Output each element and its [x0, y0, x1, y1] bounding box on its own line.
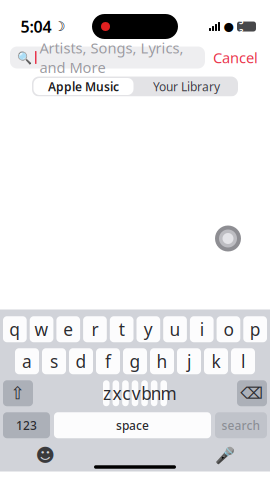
button[interactable]: n — [151, 380, 157, 406]
button[interactable]: e — [56, 316, 80, 342]
button[interactable]: p — [243, 316, 267, 342]
staticText: j — [187, 350, 191, 373]
staticText: t — [119, 318, 125, 341]
staticText: e — [63, 318, 73, 341]
button[interactable]: f — [96, 348, 120, 374]
button[interactable]: y — [136, 316, 160, 342]
button[interactable]: s — [42, 348, 66, 374]
button[interactable]: q — [3, 316, 27, 342]
button[interactable]: o — [217, 316, 240, 342]
staticText: g — [129, 350, 140, 373]
staticText: ☻ — [35, 445, 54, 466]
button[interactable]: t — [110, 316, 133, 342]
button[interactable]: space — [54, 412, 211, 438]
button[interactable]: Your Library — [135, 76, 238, 96]
staticText: w — [35, 318, 49, 341]
button[interactable]: u — [163, 316, 187, 342]
staticText: 🎤 — [215, 446, 235, 464]
button[interactable]: v — [132, 380, 138, 406]
staticText: space — [116, 417, 149, 433]
button[interactable]: c — [122, 380, 129, 406]
staticText: Your Library — [153, 78, 220, 94]
staticText: v — [132, 382, 138, 405]
staticText: ⇧ — [10, 383, 25, 403]
staticText: i — [200, 318, 204, 341]
staticText: Cancel — [213, 48, 258, 67]
button[interactable]: b — [141, 380, 148, 406]
button[interactable]: 123 — [3, 412, 50, 438]
staticText: 53 — [239, 16, 244, 37]
staticText: q — [9, 318, 20, 341]
button[interactable]: i — [190, 316, 214, 342]
staticText: r — [91, 318, 98, 341]
staticText: 5:04 — [20, 16, 51, 37]
button[interactable]: Delete — [237, 380, 267, 406]
staticText: m — [160, 382, 167, 405]
button[interactable]: z — [103, 380, 110, 406]
staticText: ☽ — [53, 19, 65, 34]
staticText: ● — [223, 20, 233, 33]
staticText: h — [156, 350, 167, 373]
staticText: Apple Music — [48, 78, 119, 94]
button[interactable]: search — [215, 412, 267, 438]
button[interactable]: m — [160, 380, 167, 406]
button[interactable]: d — [69, 348, 93, 374]
staticText: z — [103, 382, 110, 405]
staticText: 🔍 — [17, 51, 32, 64]
staticText: b — [141, 382, 148, 405]
staticText: k — [211, 350, 220, 373]
staticText: ⌫ — [240, 384, 263, 402]
staticText: d — [75, 350, 86, 373]
button[interactable]: h — [150, 348, 174, 374]
staticText: u — [170, 318, 181, 341]
staticText: Artists, Songs, Lyrics, and More — [39, 38, 183, 77]
button[interactable]: j — [177, 348, 201, 374]
staticText: 123 — [16, 417, 37, 433]
staticText: search — [221, 417, 260, 433]
button[interactable]: a — [15, 348, 39, 374]
button[interactable]: Shift — [3, 380, 33, 406]
staticText: s — [50, 350, 58, 373]
button[interactable]: Emoji — [32, 445, 58, 465]
button[interactable]: r — [83, 316, 107, 342]
staticText: o — [223, 318, 233, 341]
button[interactable]: k — [204, 348, 228, 374]
button[interactable]: l — [231, 348, 255, 374]
button[interactable]: x — [113, 380, 119, 406]
staticText: p — [250, 318, 261, 341]
button[interactable]: w — [30, 316, 53, 342]
button[interactable]: 🔍 — [10, 46, 205, 68]
staticText: x — [113, 382, 119, 405]
button[interactable]: Cancel — [211, 46, 260, 68]
staticText: c — [122, 382, 129, 405]
staticText: n — [151, 382, 157, 405]
staticText: l — [241, 350, 245, 373]
button[interactable]: Apple Music — [32, 76, 135, 96]
staticText: y — [144, 318, 153, 341]
button[interactable]: g — [123, 348, 147, 374]
staticText: f — [105, 350, 111, 373]
staticText: a — [22, 350, 32, 373]
button[interactable]: Dictation — [212, 445, 238, 465]
